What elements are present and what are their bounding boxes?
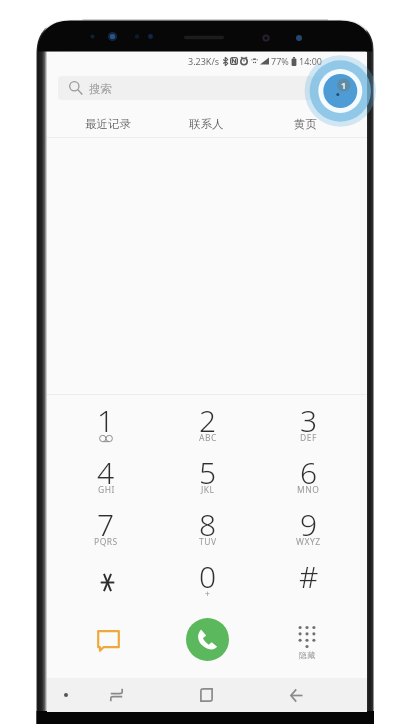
staticText: 14:00 xyxy=(299,55,323,67)
button[interactable]: Message xyxy=(58,603,158,678)
button[interactable]: Call xyxy=(158,603,257,678)
button[interactable]: Home xyxy=(184,678,228,712)
staticText: 7 xyxy=(97,504,115,545)
staticText: 3 xyxy=(300,400,318,441)
button[interactable]: 联系人 xyxy=(157,106,256,137)
staticText: JKL xyxy=(201,484,215,496)
staticText: 8 xyxy=(199,504,217,545)
staticText: MNO xyxy=(297,484,320,496)
staticText: 4 xyxy=(97,452,115,493)
staticText: 黄页 xyxy=(294,117,317,131)
staticText: PQRS xyxy=(94,536,118,548)
button[interactable]: 最近记录 xyxy=(59,106,157,137)
staticText: 最近记录 xyxy=(85,117,131,131)
button[interactable]: 4 xyxy=(55,447,157,499)
button[interactable]: # xyxy=(258,551,359,603)
button[interactable] xyxy=(55,551,157,603)
staticText: ABC xyxy=(199,432,217,444)
staticText: GHI xyxy=(98,484,115,496)
button[interactable]: 9 xyxy=(258,499,359,551)
staticText: TUV xyxy=(199,536,217,548)
staticText: 1 xyxy=(341,79,347,91)
staticText: # xyxy=(299,556,319,597)
button[interactable]: 3 xyxy=(258,395,359,447)
staticText: 77% xyxy=(271,55,289,67)
staticText: 3.23K/s xyxy=(188,55,220,67)
staticText: + xyxy=(205,588,211,600)
staticText: 搜索 xyxy=(89,82,112,96)
button[interactable]: Back xyxy=(274,678,318,712)
staticText: 9 xyxy=(300,504,318,545)
staticText: 联系人 xyxy=(189,117,224,131)
staticText: 1 xyxy=(97,400,115,441)
button[interactable]: 8 xyxy=(157,499,258,551)
staticText: 0 xyxy=(199,556,217,597)
staticText: 6 xyxy=(300,452,318,493)
button[interactable]: 1 xyxy=(55,395,157,447)
button[interactable]: Recents xyxy=(94,678,138,712)
staticText: 隐藏 xyxy=(299,650,315,660)
button[interactable]: 2 xyxy=(157,395,258,447)
staticText: DEF xyxy=(300,432,317,444)
button[interactable]: 0 xyxy=(157,551,258,603)
staticText: 2 xyxy=(199,400,217,441)
button[interactable]: 6 xyxy=(258,447,359,499)
button[interactable]: 黄页 xyxy=(256,106,355,137)
button[interactable]: Indicator xyxy=(47,678,85,712)
button[interactable]: 搜索 xyxy=(58,76,356,100)
staticText: 5 xyxy=(199,452,217,493)
button[interactable]: Hide keypad xyxy=(257,603,356,678)
button[interactable]: 5 xyxy=(157,447,258,499)
staticText: WXYZ xyxy=(296,536,321,548)
button[interactable]: 7 xyxy=(55,499,157,551)
